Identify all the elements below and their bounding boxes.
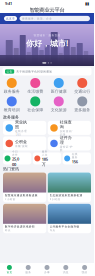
staticText: 在线服务 [72, 152, 78, 159]
staticText: 生活缴费 [27, 89, 43, 94]
staticText: 25,000 [12, 156, 19, 167]
staticText: 服务人次 [42, 150, 48, 157]
staticText: 办事 [44, 271, 50, 274]
staticText: 关于推进数字化转型的通知 [16, 70, 52, 73]
staticText: 证件办理 [60, 135, 72, 145]
staticText: 余额·提取 [15, 144, 28, 148]
staticText: 2小时前 [5, 197, 16, 201]
button[interactable]: 北京市 [4, 16, 17, 21]
button[interactable]: 证件办理 [48, 136, 91, 150]
staticText: 智慧城市建设取得新进展 [5, 194, 38, 197]
button[interactable]: 文化旅游 [47, 96, 70, 112]
button[interactable]: 教育培训 [0, 96, 23, 112]
button[interactable]: 更多服务 [70, 96, 94, 112]
button[interactable]: 公共服务平台全面升级 [48, 204, 91, 233]
staticText: 消息 [63, 271, 69, 274]
button[interactable]: 在线服务 [63, 152, 91, 164]
button[interactable]: 智慧城市建设取得新进展 [3, 173, 46, 202]
button[interactable]: 交通出行 [70, 78, 94, 94]
staticText: 156 [72, 159, 78, 164]
staticText: ▮▮ [85, 1, 89, 6]
staticText: 4小时前 [50, 197, 61, 201]
button[interactable]: 今日办件 [3, 152, 31, 164]
staticText: 文化旅游 [51, 107, 67, 112]
staticText: 首页 [6, 271, 12, 274]
staticText: 智能商业云平台 [29, 7, 64, 13]
staticText: 身份证·护照 [60, 145, 73, 152]
staticText: 医疗健康 [51, 89, 67, 94]
staticText: 交通出行 [74, 89, 90, 94]
staticText: 智慧城市 · 服务百姓 [33, 33, 60, 37]
button[interactable]: 服务人次 [33, 152, 61, 164]
staticText: 更多服务 [74, 107, 90, 112]
staticText: 搜索服务、政策、企业 [22, 17, 52, 20]
button[interactable]: 首页 [0, 265, 19, 274]
button[interactable]: 公告 [2, 67, 91, 75]
staticText: 公共服务平台全面升级 [50, 225, 80, 228]
button[interactable]: 生活缴费 [23, 78, 47, 94]
staticText: 公积金 [15, 139, 27, 144]
button[interactable]: 搜索服务、政策、企业 [19, 16, 90, 21]
button[interactable]: 消息 [56, 265, 75, 274]
button[interactable]: 生态旅游迎来发展新机遇 [48, 173, 91, 202]
staticText: 数字经济促进区域协同 [5, 225, 35, 228]
staticText: 185万 [42, 157, 48, 167]
staticText: 实时查询·记录 [60, 129, 73, 136]
staticText: 我的 [82, 271, 88, 274]
button[interactable]: 社会保障 [23, 96, 47, 112]
button[interactable]: 办事 [38, 265, 56, 274]
staticText: 昨天 [5, 229, 11, 232]
staticText: 9:41 [5, 1, 12, 6]
staticText: 昨天 [50, 229, 56, 232]
staticText: 政务服务 [3, 115, 19, 120]
staticText: 在线办理·3日 [15, 129, 27, 136]
button[interactable]: 社保查询 [48, 121, 91, 135]
staticText: 社会保障 [27, 107, 43, 112]
button[interactable]: 数字经济促进区域协同 [3, 204, 46, 233]
staticText: 政务服务 [4, 89, 20, 94]
button[interactable]: 公积金 [3, 136, 46, 150]
button[interactable]: 政务服务 [0, 78, 23, 94]
staticText: 热门资讯 [3, 166, 19, 171]
button[interactable]: 我的 [75, 265, 94, 274]
button[interactable]: 营业执照 [3, 121, 46, 135]
staticText: 公告 [7, 70, 13, 73]
staticText: 你好，城市! [26, 38, 68, 48]
staticText: 社保查询 [60, 120, 72, 129]
staticText: 教育培训 [4, 107, 20, 112]
staticText: 营业执照 [15, 120, 27, 129]
staticText: 生态旅游迎来发展新机遇 [50, 194, 83, 197]
staticText: 北京市 [6, 17, 15, 20]
button[interactable]: 服务 [19, 265, 38, 274]
staticText: 服务 [25, 271, 31, 274]
button[interactable]: 医疗健康 [47, 78, 70, 94]
staticText: 今日办件 [12, 150, 18, 156]
